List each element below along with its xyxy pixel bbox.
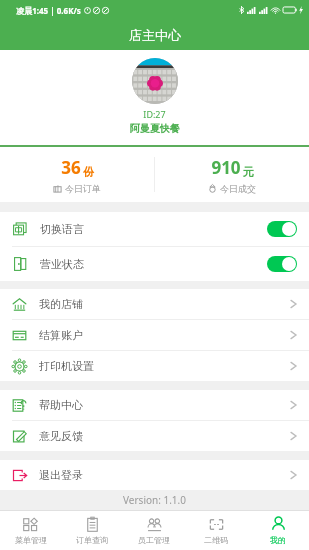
staticText: 36: [61, 156, 81, 179]
staticText: 阿曼夏快餐: [130, 122, 180, 135]
button[interactable]: 打印机设置: [0, 351, 309, 381]
button[interactable]: 我的: [247, 511, 309, 550]
staticText: 店主中心: [129, 27, 181, 43]
staticText: 订单查询: [76, 535, 108, 545]
staticText: Version: 1.1.0: [123, 493, 186, 507]
button[interactable]: 营业状态: [0, 247, 309, 281]
button[interactable]: 36: [0, 147, 154, 202]
staticText: 菜单管理: [15, 535, 47, 545]
staticText: 打印机设置: [39, 359, 94, 373]
staticText: 今日成交: [220, 183, 256, 194]
button[interactable]: 帮助中心: [0, 390, 309, 420]
button[interactable]: 二维码: [185, 511, 247, 550]
staticText: 退出登录: [39, 468, 83, 482]
staticText: ID:27: [143, 108, 166, 120]
staticText: 员工管理: [138, 535, 170, 545]
staticText: 意见反馈: [39, 429, 83, 443]
staticText: 我的: [270, 535, 286, 545]
button[interactable]: 切换语言: [0, 212, 309, 246]
staticText: 元: [243, 165, 254, 179]
staticText: 今日订单: [65, 183, 101, 194]
staticText: 切换语言: [40, 222, 84, 236]
staticText: 910: [211, 156, 241, 179]
button[interactable]: Toggle on: [267, 221, 297, 237]
button[interactable]: 菜单管理: [0, 511, 61, 550]
button[interactable]: 员工管理: [123, 511, 185, 550]
staticText: 份: [83, 165, 94, 179]
button[interactable]: 910: [155, 147, 309, 202]
button[interactable]: 意见反馈: [0, 421, 309, 451]
button[interactable]: 结算账户: [0, 320, 309, 350]
button[interactable]: 我的店铺: [0, 289, 309, 319]
staticText: 营业状态: [40, 257, 84, 271]
staticText: 帮助中心: [39, 398, 83, 412]
button[interactable]: 退出登录: [0, 460, 309, 490]
button[interactable]: 订单查询: [61, 511, 123, 550]
button[interactable]: Toggle on: [267, 256, 297, 272]
staticText: 结算账户: [39, 328, 83, 342]
staticText: 凌晨1:45 | 0.6K/s: [16, 5, 81, 16]
staticText: 二维码: [204, 535, 228, 545]
staticText: 我的店铺: [39, 297, 83, 311]
